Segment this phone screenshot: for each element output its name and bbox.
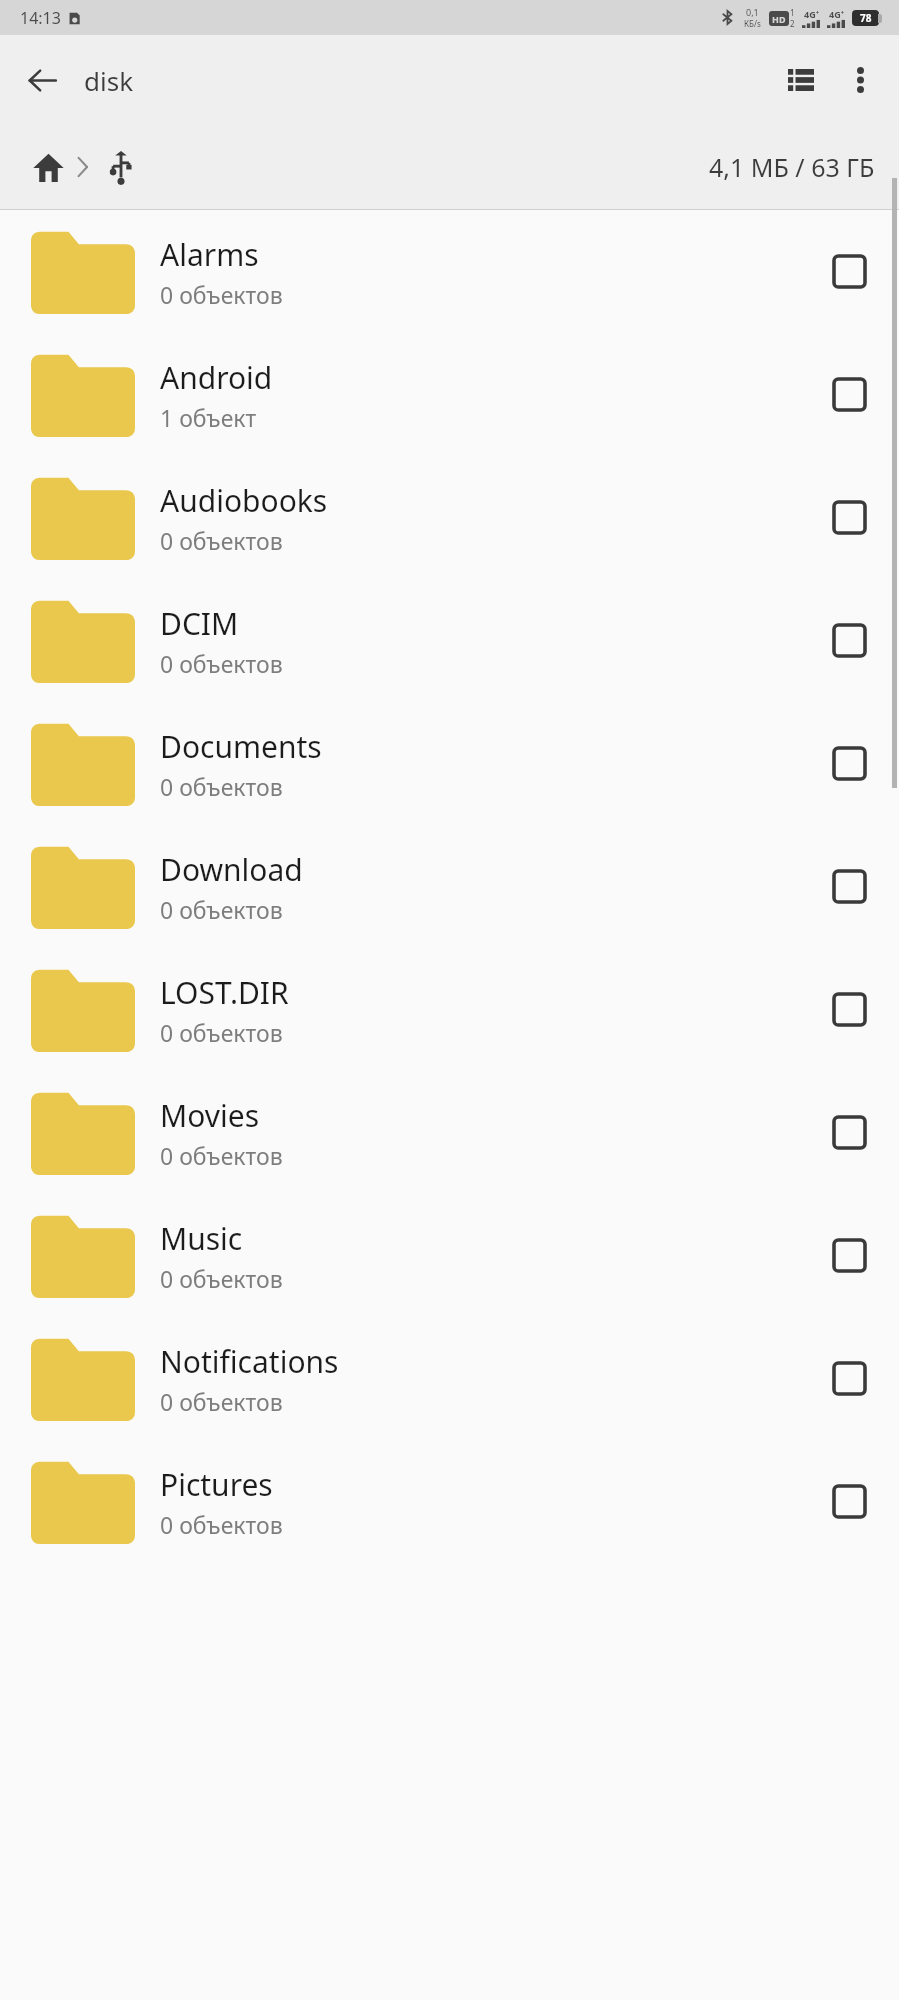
staticText: 4G⁺: [829, 8, 844, 20]
staticText: 4,1 МБ / 63 ГБ: [709, 150, 875, 184]
staticText: 0 объектов: [160, 771, 283, 802]
staticText: Android: [160, 357, 273, 398]
button[interactable]: Select Alarms: [799, 210, 899, 333]
staticText: disk: [84, 63, 134, 98]
staticText: 0 объектов: [160, 1509, 283, 1540]
button[interactable]: Music: [0, 1194, 899, 1317]
button[interactable]: Select Audiobooks: [799, 456, 899, 579]
staticText: LOST.DIR: [160, 972, 289, 1013]
staticText: 78: [860, 11, 872, 25]
button[interactable]: Select Pictures: [799, 1440, 899, 1563]
staticText: 0 объектов: [160, 1386, 283, 1417]
button[interactable]: Android: [0, 333, 899, 456]
staticText: Music: [160, 1218, 243, 1259]
staticText: 4G⁺: [804, 8, 819, 20]
button[interactable]: Alarms: [0, 210, 899, 333]
staticText: 0 объектов: [160, 894, 283, 925]
staticText: 1 объект: [160, 402, 257, 433]
staticText: 0 объектов: [160, 525, 283, 556]
staticText: Pictures: [160, 1464, 273, 1505]
button[interactable]: Select Download: [799, 825, 899, 948]
staticText: 2: [790, 18, 795, 29]
staticText: Movies: [160, 1095, 260, 1136]
button[interactable]: Notifications: [0, 1317, 899, 1440]
button[interactable]: More options: [831, 51, 889, 109]
staticText: 0 объектов: [160, 1017, 283, 1048]
button[interactable]: USB storage: [97, 143, 145, 191]
button[interactable]: Download: [0, 825, 899, 948]
button[interactable]: Home: [24, 143, 72, 191]
button[interactable]: Movies: [0, 1071, 899, 1194]
button[interactable]: DCIM: [0, 579, 899, 702]
button[interactable]: Select Music: [799, 1194, 899, 1317]
staticText: КБ/s: [744, 18, 761, 29]
staticText: Notifications: [160, 1341, 339, 1382]
button[interactable]: LOST.DIR: [0, 948, 899, 1071]
staticText: Documents: [160, 726, 322, 767]
staticText: 0,1: [746, 6, 759, 18]
button[interactable]: Audiobooks: [0, 456, 899, 579]
button[interactable]: Select LOST.DIR: [799, 948, 899, 1071]
button[interactable]: Back: [14, 52, 70, 108]
staticText: Download: [160, 849, 303, 890]
button[interactable]: Documents: [0, 702, 899, 825]
button[interactable]: Select Android: [799, 333, 899, 456]
staticText: 1: [790, 7, 795, 18]
staticText: DCIM: [160, 603, 239, 644]
staticText: Audiobooks: [160, 480, 328, 521]
staticText: 0 объектов: [160, 1140, 283, 1171]
staticText: Alarms: [160, 234, 259, 275]
staticText: HD: [772, 13, 786, 25]
button[interactable]: Select Documents: [799, 702, 899, 825]
button[interactable]: Pictures: [0, 1440, 899, 1563]
staticText: 0 объектов: [160, 279, 283, 310]
button[interactable]: Select DCIM: [799, 579, 899, 702]
button[interactable]: Select Movies: [799, 1071, 899, 1194]
staticText: 0 объектов: [160, 648, 283, 679]
button[interactable]: Select Notifications: [799, 1317, 899, 1440]
staticText: 14:13: [20, 7, 61, 29]
button[interactable]: View mode: [771, 50, 831, 110]
staticText: 0 объектов: [160, 1263, 283, 1294]
